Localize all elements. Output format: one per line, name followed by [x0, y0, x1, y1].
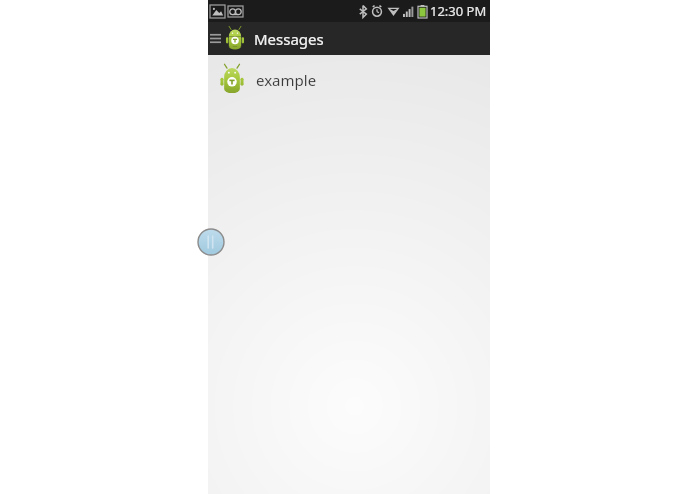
button[interactable]: Open navigation drawer [208, 22, 222, 55]
button[interactable]: example [208, 55, 490, 105]
staticText: 12:30 PM [430, 2, 487, 20]
button[interactable]: Drag handle [197, 228, 225, 256]
staticText: Messages [254, 29, 324, 49]
staticText: example [256, 70, 317, 90]
